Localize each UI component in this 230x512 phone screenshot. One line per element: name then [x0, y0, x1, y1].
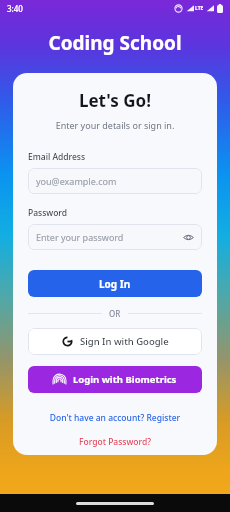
button[interactable]: Forgot Password?	[28, 436, 202, 448]
other: Show password	[183, 232, 194, 243]
staticText: Let's Go!	[28, 89, 202, 112]
button[interactable]: Don't have an account? Register	[28, 412, 202, 424]
staticText: Coding School	[0, 30, 230, 56]
staticText: Login with Biometrics	[73, 373, 177, 386]
button[interactable]: Enter your password	[28, 224, 202, 250]
staticText: Enter your password	[36, 231, 183, 243]
staticText: LTE	[195, 5, 204, 12]
staticText: OR	[109, 308, 121, 319]
staticText: you@example.com	[36, 175, 194, 187]
staticText: Password	[28, 207, 68, 219]
staticText: Enter your details or sign in.	[28, 119, 202, 131]
staticText: Email Address	[28, 151, 86, 163]
button[interactable]: Sign In with Google	[28, 328, 202, 355]
staticText: 3:40	[7, 3, 23, 14]
staticText: Log In	[99, 277, 131, 291]
button[interactable]: Login with Biometrics	[28, 366, 202, 393]
button[interactable]: Log In	[28, 270, 202, 297]
button[interactable]: you@example.com	[28, 168, 202, 194]
staticText: Sign In with Google	[80, 335, 169, 348]
